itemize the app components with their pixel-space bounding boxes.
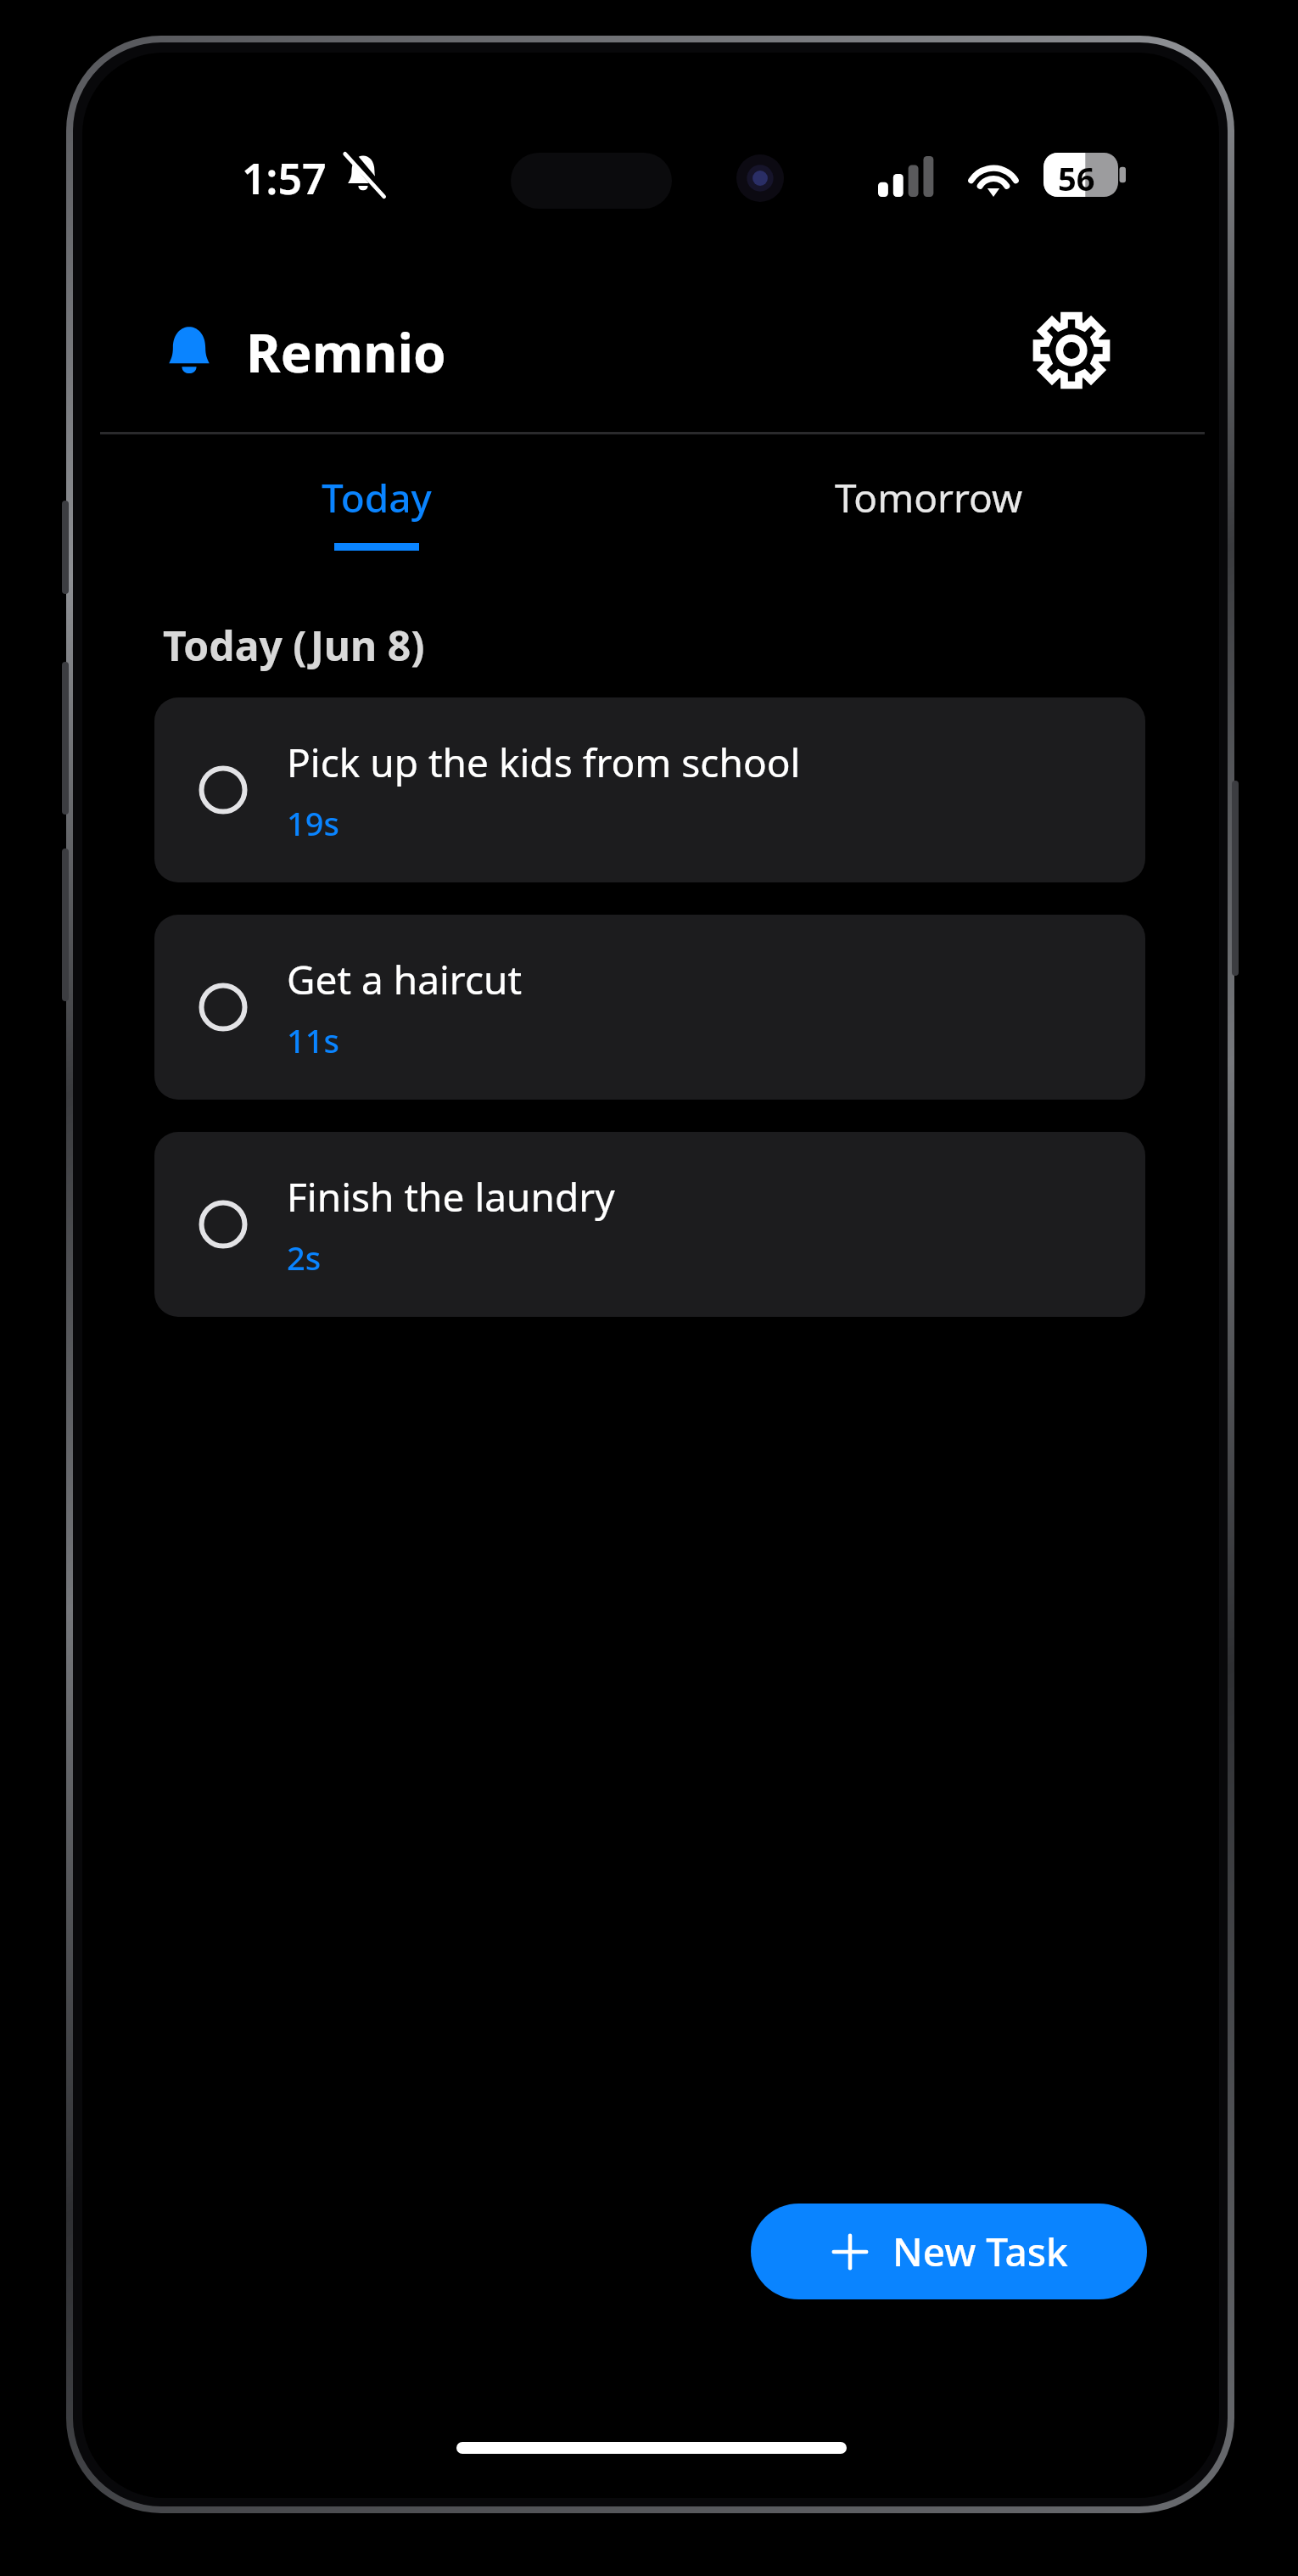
button[interactable]: Get a haircut — [154, 915, 1145, 1100]
staticText: Today — [322, 471, 432, 524]
staticText: 1:57 — [242, 149, 327, 207]
staticText: Remnio — [246, 316, 446, 388]
button[interactable]: Finish the laundry — [154, 1132, 1145, 1317]
staticText: New Task — [892, 2225, 1068, 2278]
button[interactable]: Tomorrow — [652, 447, 1205, 557]
staticText: 2s — [287, 1235, 322, 1280]
button[interactable]: Today — [100, 447, 652, 557]
staticText: 56 — [1058, 156, 1095, 200]
staticText: Finish the laundry — [287, 1170, 615, 1224]
button[interactable]: New Task — [751, 2204, 1147, 2299]
button[interactable]: Settings — [1016, 295, 1127, 406]
staticText: 11s — [287, 1018, 339, 1062]
button[interactable]: Pick up the kids from school — [154, 697, 1145, 882]
staticText: Today (Jun 8) — [163, 618, 425, 673]
staticText: 19s — [287, 801, 339, 845]
staticText: Get a haircut — [287, 953, 523, 1006]
staticText: Tomorrow — [835, 471, 1023, 524]
staticText: Pick up the kids from school — [287, 736, 801, 789]
